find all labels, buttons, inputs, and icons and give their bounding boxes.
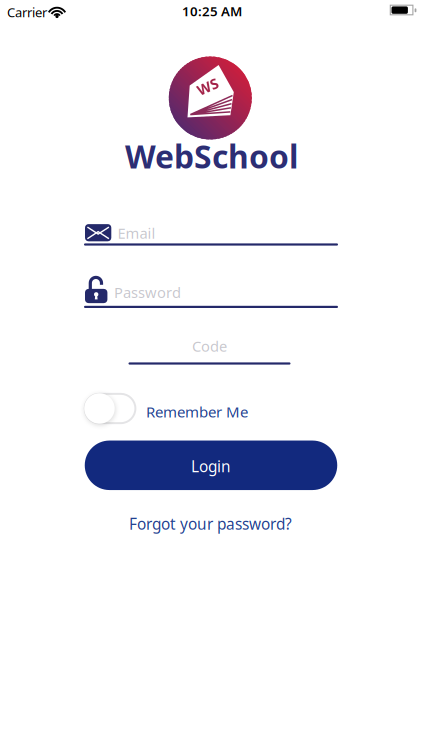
staticText: Remember Me <box>146 401 248 422</box>
staticText: Email <box>118 223 156 243</box>
staticText: WebSchool <box>125 134 298 178</box>
staticText: Password <box>114 282 181 302</box>
staticText: WS <box>197 77 219 96</box>
staticText: Forgot your password? <box>129 513 292 534</box>
button[interactable]: Code <box>128 334 290 365</box>
staticText: Carrier <box>7 3 47 21</box>
button[interactable]: Password <box>84 272 338 309</box>
staticText: Code <box>192 336 227 356</box>
staticText: Login <box>191 456 231 477</box>
button[interactable]: Email <box>84 220 338 246</box>
staticText: 10:25 AM <box>182 2 242 20</box>
button[interactable]: Forgot your password? <box>129 513 292 534</box>
button[interactable]: Login <box>85 441 337 490</box>
button[interactable]: Remember Me <box>85 394 135 423</box>
